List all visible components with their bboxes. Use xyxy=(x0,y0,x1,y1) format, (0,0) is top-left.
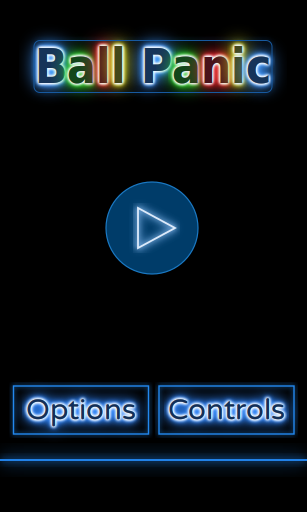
staticText: l xyxy=(96,39,111,94)
staticText: c xyxy=(246,39,271,94)
staticText: a xyxy=(172,39,201,94)
staticText: a xyxy=(172,39,201,94)
staticText: Options xyxy=(26,392,136,428)
staticText: Controls xyxy=(168,392,285,428)
staticText: l xyxy=(96,39,111,94)
staticText: a xyxy=(67,39,96,94)
staticText: P xyxy=(141,39,172,94)
staticText: l xyxy=(111,39,126,94)
staticText: Controls xyxy=(168,392,285,428)
staticText: n xyxy=(201,39,231,94)
staticText: a xyxy=(67,39,96,94)
staticText: Controls xyxy=(168,392,285,428)
staticText: B xyxy=(35,39,67,94)
staticText: B xyxy=(35,39,67,94)
staticText: a xyxy=(67,39,96,94)
staticText: P xyxy=(141,39,172,94)
staticText xyxy=(126,39,141,94)
staticText: l xyxy=(96,39,111,94)
button[interactable]: Controls xyxy=(159,386,294,434)
staticText: n xyxy=(201,39,231,94)
staticText: a xyxy=(172,39,201,94)
staticText: c xyxy=(246,39,271,94)
staticText: P xyxy=(141,39,172,94)
staticText: B xyxy=(35,39,67,94)
staticText: l xyxy=(111,39,126,94)
staticText: c xyxy=(246,39,271,94)
staticText: n xyxy=(201,39,231,94)
staticText: i xyxy=(231,39,246,94)
staticText: Options xyxy=(26,392,136,428)
staticText: Options xyxy=(26,392,136,428)
button[interactable]: Play xyxy=(106,182,198,274)
button[interactable]: Options xyxy=(13,386,148,434)
staticText: l xyxy=(111,39,126,94)
staticText: i xyxy=(231,39,246,94)
staticText: i xyxy=(231,39,246,94)
